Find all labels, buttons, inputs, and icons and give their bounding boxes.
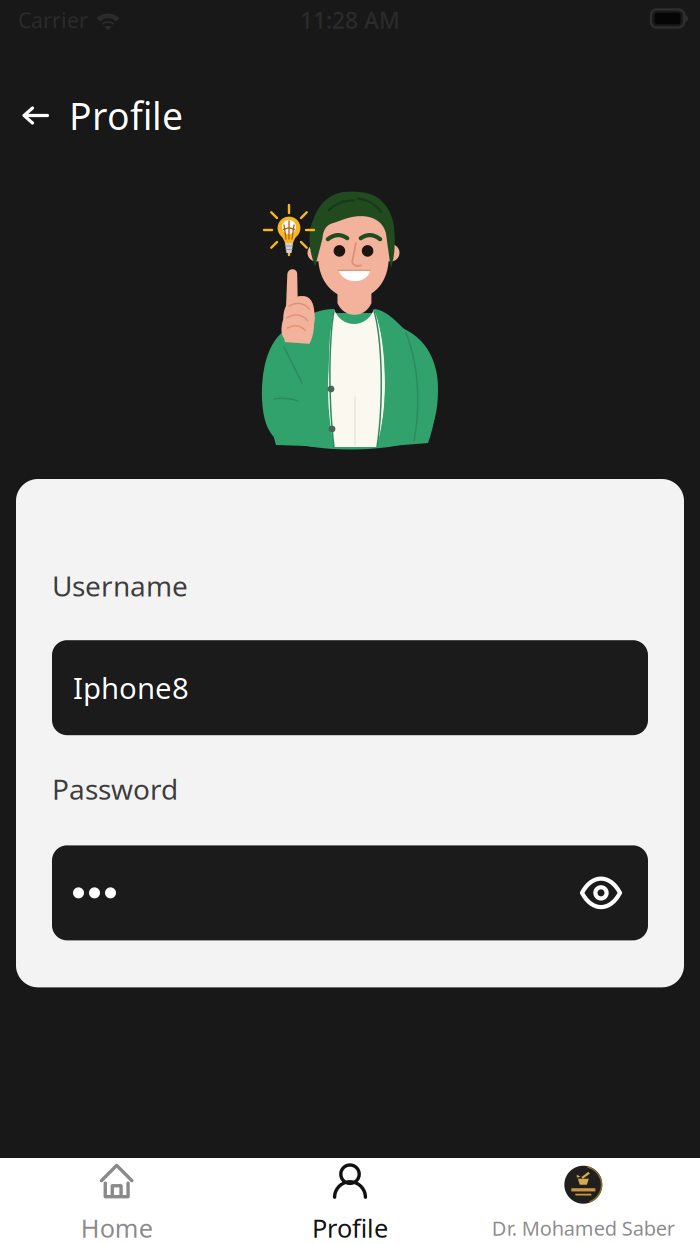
button[interactable]: Home: [0, 1158, 233, 1244]
staticText: Dr. Mohamed Saber: [492, 1215, 675, 1241]
button[interactable]: Back: [0, 47, 69, 184]
staticText: Carrier: [18, 6, 88, 34]
staticText: Home: [81, 1211, 153, 1244]
staticText: Iphone8: [73, 668, 189, 707]
button[interactable]: Profile: [233, 1158, 467, 1244]
button[interactable]: Dr. Mohamed Saber: [467, 1158, 700, 1244]
staticText: 11:28 AM: [300, 5, 400, 35]
staticText: Profile: [69, 91, 183, 140]
button[interactable]: Iphone8: [52, 640, 648, 735]
staticText: Password: [52, 770, 178, 807]
staticText: Username: [52, 567, 188, 604]
staticText: Profile: [312, 1211, 388, 1244]
button[interactable]: Show password: [580, 877, 622, 909]
